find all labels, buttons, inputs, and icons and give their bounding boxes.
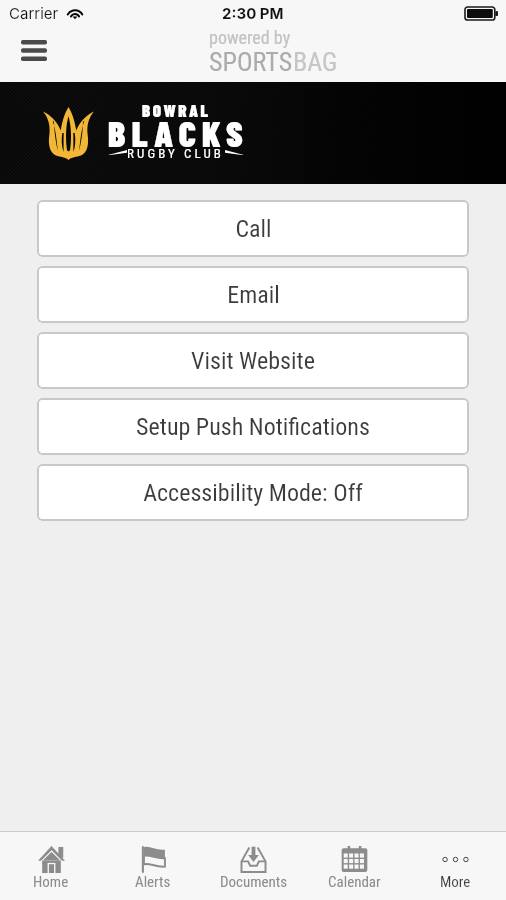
staticText: Email <box>227 281 280 309</box>
staticText: Home <box>33 873 69 891</box>
button[interactable]: Call <box>37 200 469 257</box>
button[interactable]: Email <box>37 266 469 323</box>
staticText: Accessibility Mode: Off <box>143 479 363 507</box>
button[interactable]: Documents <box>203 832 304 900</box>
button[interactable]: More <box>405 832 506 900</box>
staticText: Setup Push Notifications <box>136 413 370 441</box>
button[interactable]: Alerts <box>102 832 203 900</box>
button[interactable]: Setup Push Notifications <box>37 398 469 455</box>
staticText: SPORTS <box>209 47 293 77</box>
staticText: BOWRAL <box>142 100 211 120</box>
staticText: BAG <box>293 47 338 77</box>
staticText: Visit Website <box>191 347 315 375</box>
staticText: Carrier <box>9 4 59 22</box>
button[interactable]: Open navigation menu <box>7 23 61 77</box>
staticText: powered by <box>209 27 291 48</box>
staticText: BLACKS <box>108 111 244 154</box>
staticText: Documents <box>220 873 288 891</box>
button[interactable]: Visit Website <box>37 332 469 389</box>
staticText: Call <box>235 215 272 243</box>
button[interactable]: Calendar <box>304 832 405 900</box>
button[interactable]: Accessibility Mode: Off <box>37 464 469 521</box>
staticText: Alerts <box>135 873 171 891</box>
staticText: RUGBY CLUB <box>127 146 225 161</box>
staticText: 2:30 PM <box>222 4 284 22</box>
staticText: More <box>440 873 471 891</box>
staticText: Calendar <box>328 873 381 891</box>
button[interactable]: Home <box>0 832 102 900</box>
